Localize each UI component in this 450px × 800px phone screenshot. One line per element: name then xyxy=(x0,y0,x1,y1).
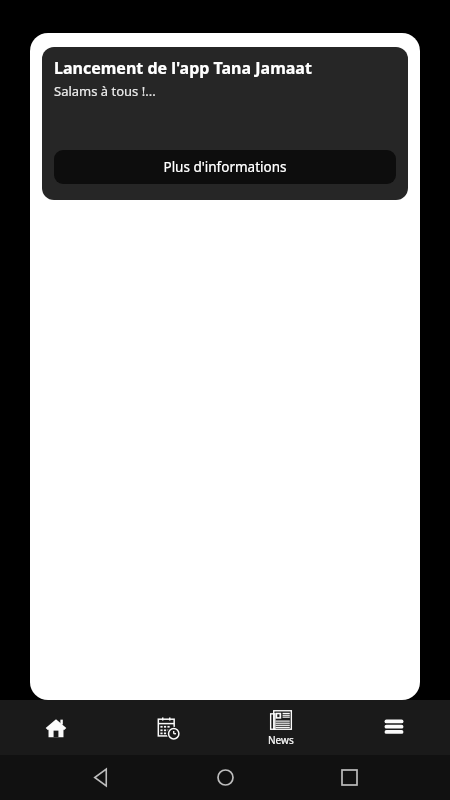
button[interactable]: Schedule xyxy=(112,700,224,755)
button[interactable]: Home xyxy=(202,755,248,800)
button[interactable]: News xyxy=(224,700,337,755)
button[interactable]: Plus d'informations xyxy=(54,150,396,184)
staticText: Lancement de l'app Tana Jamaat xyxy=(54,57,312,79)
button[interactable]: Back xyxy=(78,755,124,800)
staticText: Plus d'informations xyxy=(163,158,287,176)
staticText: News xyxy=(268,733,294,747)
button[interactable]: Menu xyxy=(337,700,450,755)
button[interactable]: Lancement de l'app Tana Jamaat xyxy=(42,47,408,200)
staticText: Salams à tous !... xyxy=(54,82,156,100)
button[interactable]: Recent apps xyxy=(326,755,372,800)
button[interactable]: Home xyxy=(0,700,112,755)
